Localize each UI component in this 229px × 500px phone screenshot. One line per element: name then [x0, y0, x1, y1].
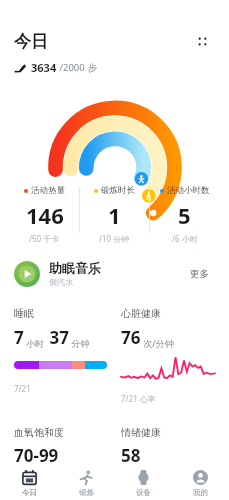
staticText: 更多 [190, 268, 209, 280]
staticText: 1 [108, 200, 121, 230]
staticText: 活动热量 [31, 185, 65, 196]
button[interactable]: 设备 [115, 468, 172, 499]
button[interactable]: 活动热量 [10, 183, 79, 246]
staticText: 小时 [24, 337, 45, 349]
staticText: /50 千卡 [29, 233, 60, 244]
staticText: 7/21 心率 [121, 393, 156, 404]
staticText: 3634 [31, 60, 57, 75]
staticText: 7 [14, 326, 24, 349]
button[interactable]: 血氧饱和度 [14, 426, 107, 467]
staticText: 倒汽水 [49, 277, 73, 287]
button[interactable]: 睡眠 [14, 307, 107, 394]
button[interactable]: 今日 [0, 468, 58, 499]
button[interactable]: 锻炼时长 [80, 183, 149, 246]
staticText: 70-99 [14, 444, 59, 467]
staticText: 情绪健康 [121, 426, 161, 439]
staticText: 助眠音乐 [49, 260, 101, 276]
staticText: 146 [26, 200, 64, 230]
staticText: 锻炼时长 [101, 185, 135, 196]
staticText: /6 小时 [172, 233, 198, 244]
staticText: /10 分钟 [99, 233, 130, 244]
staticText: 76 [121, 326, 141, 349]
staticText: 次/分钟 [141, 337, 174, 349]
staticText: 步 [88, 62, 98, 74]
staticText: 睡眠 [14, 307, 34, 320]
staticText: 今日 [14, 31, 48, 52]
button[interactable]: 我的 [172, 468, 229, 499]
staticText: 58 [121, 444, 141, 467]
button[interactable]: 心脏健康 [121, 307, 215, 404]
staticText: 7/21 [14, 383, 31, 394]
button[interactable]: 活动小时数 [150, 183, 219, 246]
staticText: 活动小时数 [167, 185, 210, 196]
staticText: 设备 [136, 488, 151, 497]
button[interactable]: 更多选项 [189, 28, 215, 54]
button[interactable]: 3634 [14, 60, 215, 75]
staticText: 心脏健康 [121, 307, 161, 320]
staticText: 5 [178, 200, 191, 230]
staticText: 今日 [22, 488, 37, 497]
staticText: /2000 [57, 61, 88, 74]
staticText: 37 [45, 326, 69, 349]
button[interactable]: 活动圆环 [0, 81, 229, 179]
staticText: 分钟 [69, 337, 90, 349]
button[interactable]: 助眠音乐 [14, 260, 215, 287]
button[interactable]: 更多 [184, 264, 215, 284]
staticText: 我的 [193, 488, 208, 497]
button[interactable]: 情绪健康 [121, 426, 215, 467]
staticText: 血氧饱和度 [14, 426, 64, 439]
button[interactable]: 锻炼 [58, 468, 115, 499]
staticText: 锻炼 [79, 488, 94, 497]
